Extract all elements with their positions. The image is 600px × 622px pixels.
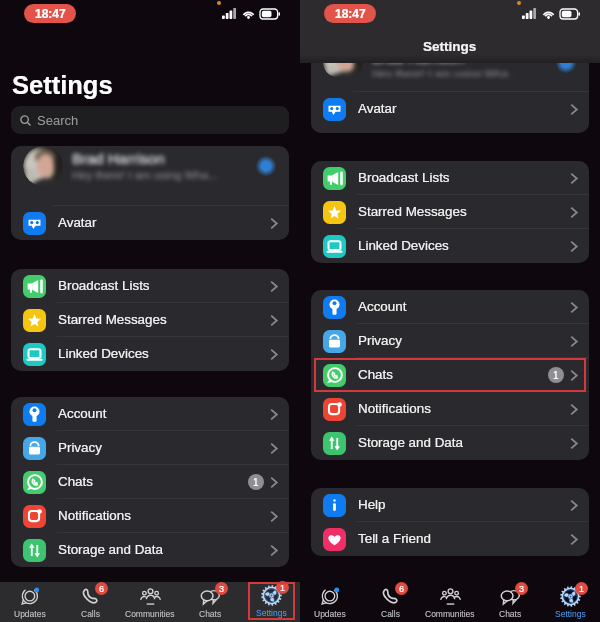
button[interactable]: Updates: [0, 582, 60, 622]
staticText: Chats: [58, 474, 93, 489]
staticText: Calls: [381, 609, 400, 618]
staticText: Storage and Data: [58, 542, 163, 557]
button[interactable]: 1: [540, 582, 600, 622]
staticText: Updates: [14, 609, 46, 618]
staticText: Account: [358, 299, 407, 314]
button[interactable]: Privacy: [11, 431, 289, 465]
button[interactable]: Account: [11, 397, 289, 431]
staticText: Avatar: [358, 101, 397, 116]
button[interactable]: Linked Devices: [311, 229, 589, 263]
staticText: 6: [99, 584, 105, 594]
button[interactable]: Broadcast Lists: [311, 161, 589, 195]
button[interactable]: Privacy: [311, 324, 589, 358]
button[interactable]: Communities: [420, 582, 480, 622]
button[interactable]: Avatar: [311, 92, 589, 126]
staticText: Hey there! I am using Wha...: [372, 68, 518, 77]
button[interactable]: Starred Messages: [11, 303, 289, 337]
staticText: Settings: [256, 608, 287, 617]
staticText: Linked Devices: [58, 346, 149, 361]
staticText: 3: [219, 584, 225, 594]
staticText: Settings: [555, 609, 586, 618]
staticText: Settings: [423, 39, 477, 54]
button[interactable]: 6: [360, 582, 420, 622]
staticText: 1: [280, 583, 286, 593]
staticText: Chats: [499, 609, 522, 618]
staticText: Avatar: [58, 215, 97, 230]
button[interactable]: 1: [248, 582, 295, 620]
button[interactable]: Account: [311, 290, 589, 324]
staticText: Broadcast Lists: [358, 170, 450, 185]
staticText: Communities: [425, 609, 475, 618]
staticText: Tell a Friend: [358, 531, 431, 546]
staticText: Brad Harrison: [72, 150, 165, 167]
staticText: 6: [399, 584, 405, 594]
staticText: Help: [358, 497, 386, 512]
staticText: Calls: [81, 609, 100, 618]
staticText: Hey there! I am using Wha...: [72, 169, 218, 182]
button[interactable]: Chats: [311, 358, 589, 392]
button[interactable]: Notifications: [11, 499, 289, 533]
staticText: Broadcast Lists: [58, 278, 150, 293]
button[interactable]: Avatar: [11, 206, 289, 240]
staticText: 18:47: [35, 7, 66, 20]
staticText: Notifications: [58, 508, 131, 523]
staticText: Starred Messages: [358, 204, 467, 219]
staticText: Privacy: [358, 333, 402, 348]
button[interactable]: Starred Messages: [311, 195, 589, 229]
button[interactable]: 3: [180, 582, 240, 622]
staticText: 1: [553, 370, 559, 381]
staticText: Linked Devices: [358, 238, 449, 253]
staticText: Communities: [125, 609, 175, 618]
staticText: Starred Messages: [58, 312, 167, 327]
staticText: Account: [58, 406, 107, 421]
staticText: Privacy: [58, 440, 102, 455]
button[interactable]: Updates: [300, 582, 360, 622]
button[interactable]: Help: [311, 488, 589, 522]
button[interactable]: Storage and Data: [311, 426, 589, 460]
staticText: Brad Harrison: [372, 63, 465, 66]
staticText: Chats: [199, 609, 222, 618]
button[interactable]: 3: [480, 582, 540, 622]
button[interactable]: Linked Devices: [11, 337, 289, 371]
staticText: Search: [37, 113, 79, 128]
button[interactable]: Notifications: [311, 392, 589, 426]
staticText: Storage and Data: [358, 435, 463, 450]
staticText: 1: [579, 584, 585, 594]
button[interactable]: Search: [11, 106, 289, 134]
staticText: Updates: [314, 609, 346, 618]
button[interactable]: Storage and Data: [11, 533, 289, 567]
staticText: 3: [519, 584, 525, 594]
staticText: Chats: [358, 367, 393, 382]
staticText: Notifications: [358, 401, 431, 416]
button[interactable]: Brad Harrison: [11, 146, 289, 205]
button[interactable]: Chats: [11, 465, 289, 499]
button[interactable]: Tell a Friend: [311, 522, 589, 556]
button[interactable]: 6: [60, 582, 120, 622]
staticText: 18:47: [335, 7, 366, 20]
staticText: 1: [253, 477, 259, 488]
button[interactable]: Communities: [120, 582, 180, 622]
staticText: Settings: [12, 71, 113, 99]
button[interactable]: Broadcast Lists: [11, 269, 289, 303]
